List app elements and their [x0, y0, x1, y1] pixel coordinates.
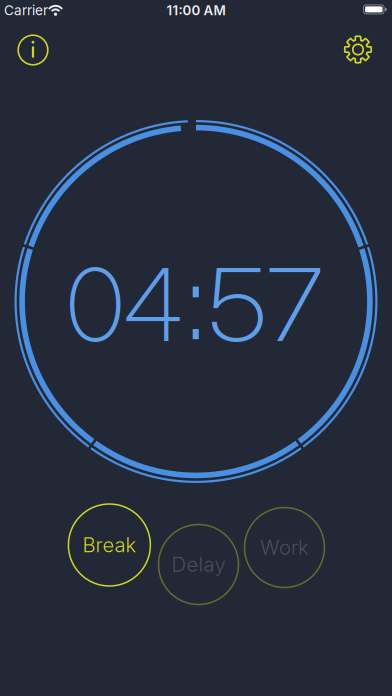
staticText: Work	[260, 535, 309, 560]
button[interactable]: Work	[244, 507, 324, 587]
staticText: Break	[82, 533, 136, 557]
button[interactable]: Info	[18, 35, 48, 65]
staticText: 11:00 AM	[166, 2, 225, 18]
staticText: 57	[213, 244, 318, 365]
button[interactable]: Break	[68, 504, 150, 586]
staticText: 04	[67, 244, 183, 365]
staticText: Carrier	[4, 2, 48, 19]
staticText: Delay	[171, 552, 225, 577]
button[interactable]: Delay	[158, 524, 238, 604]
button[interactable]: Settings	[342, 33, 374, 65]
